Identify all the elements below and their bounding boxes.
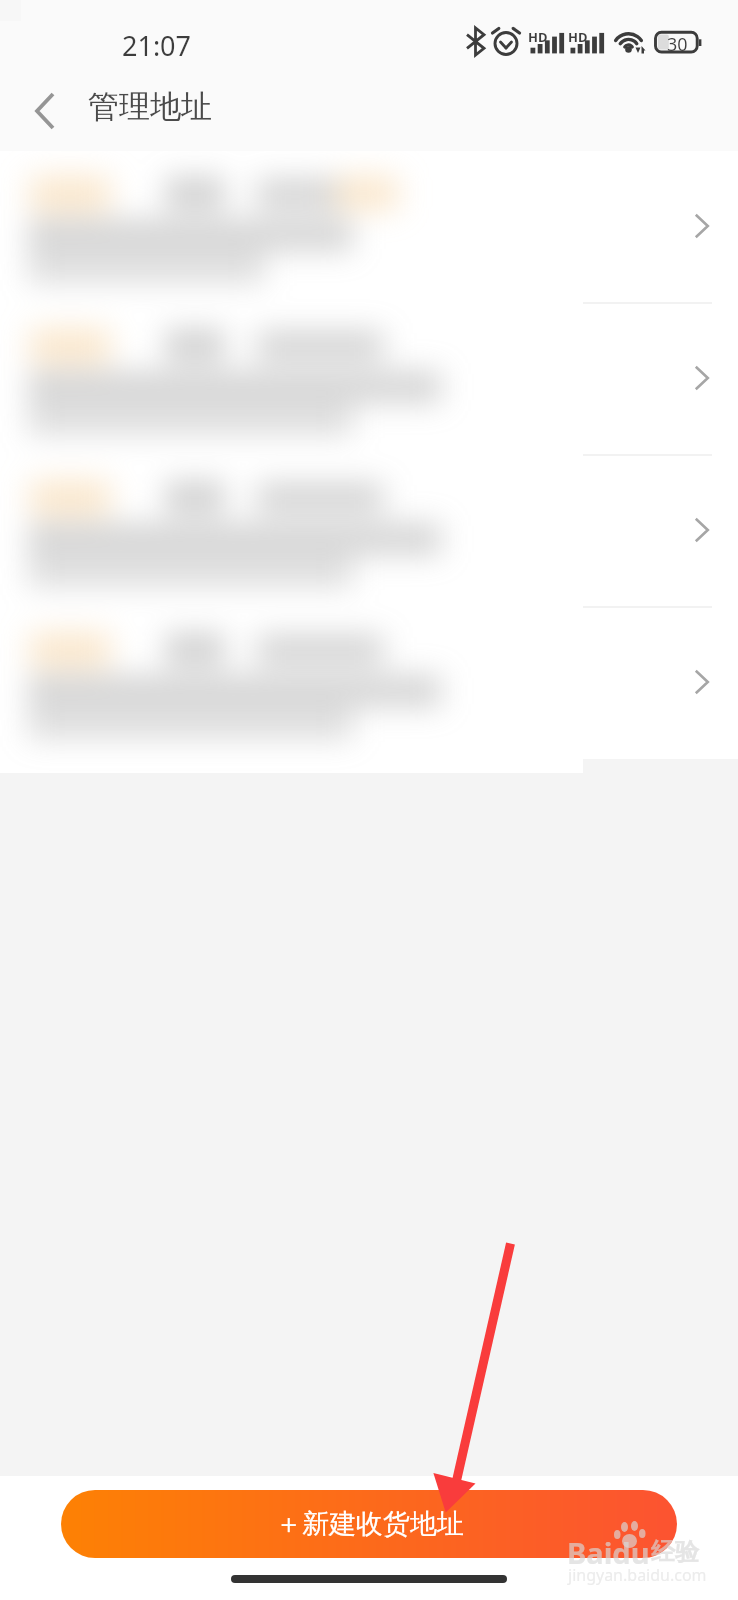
button[interactable]: Edit address: [0, 151, 738, 303]
staticText: 经验: [651, 1537, 699, 1567]
button[interactable]: Edit address: [0, 607, 738, 759]
staticText: HD: [528, 28, 548, 46]
button[interactable]: ＋新建收货地址: [61, 1490, 677, 1558]
button[interactable]: Back: [15, 83, 75, 143]
other: Edit address: [694, 365, 710, 391]
button[interactable]: Edit address: [0, 455, 738, 607]
staticText: 21:07: [122, 27, 192, 64]
other: Edit address: [694, 213, 710, 239]
staticText: jingyan.baidu.com: [568, 1564, 707, 1586]
other: Edit address: [694, 517, 710, 543]
staticText: ＋新建收货地址: [275, 1507, 464, 1541]
staticText: 管理地址: [88, 87, 212, 126]
staticText: Baidu: [567, 1533, 650, 1572]
staticText: 30: [667, 32, 688, 57]
staticText: HD: [568, 28, 588, 46]
button[interactable]: Edit address: [0, 303, 738, 455]
other: Edit address: [694, 669, 710, 695]
